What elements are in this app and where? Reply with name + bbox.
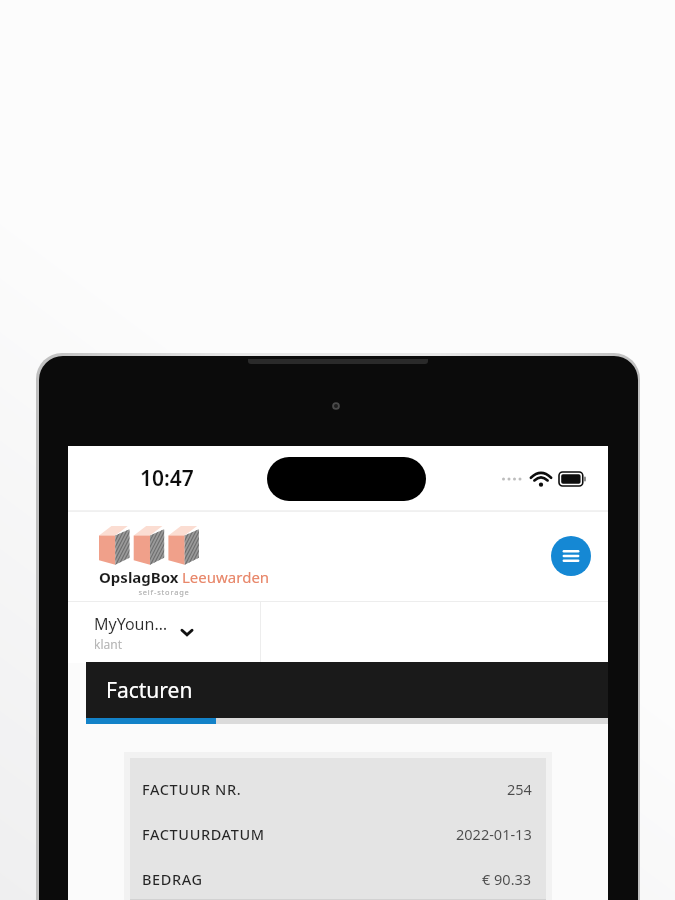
- staticText: MyYoun…: [94, 613, 168, 635]
- staticText: BEDRAG: [142, 869, 203, 889]
- staticText: 254: [507, 779, 532, 799]
- button[interactable]: MyYoun…: [68, 601, 260, 663]
- button[interactable]: FACTUUR NR.: [124, 752, 552, 900]
- staticText: self-storage: [99, 587, 229, 597]
- staticText: Leeuwarden: [182, 567, 270, 587]
- staticText: 2022-01-13: [456, 824, 532, 844]
- staticText: Facturen: [106, 676, 193, 705]
- staticText: FACTUURDATUM: [142, 824, 265, 844]
- staticText: klant: [94, 636, 122, 652]
- staticText: OpslagBox: [99, 567, 179, 587]
- button[interactable]: Facturen: [86, 662, 608, 724]
- staticText: FACTUUR NR.: [142, 779, 242, 799]
- staticText: 10:47: [140, 464, 194, 493]
- button[interactable]: Menu: [551, 536, 591, 576]
- staticText: € 90.33: [482, 869, 532, 889]
